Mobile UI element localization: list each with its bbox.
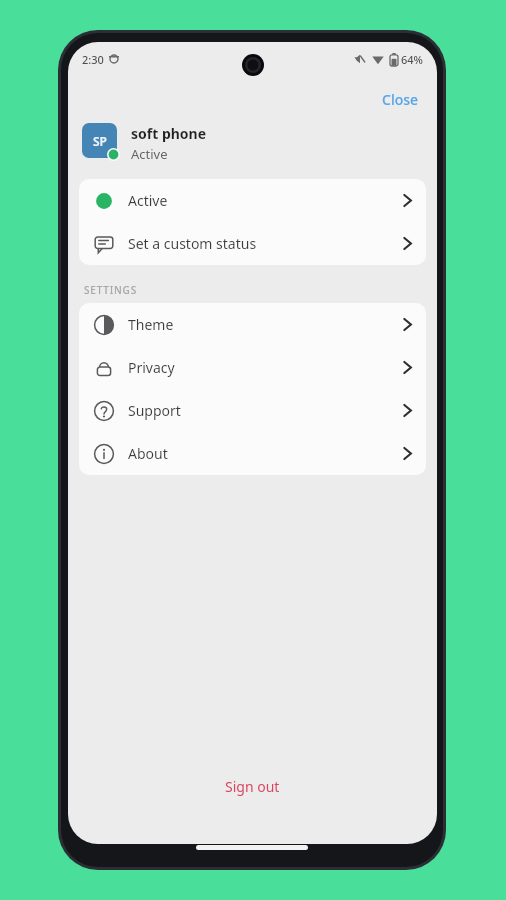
staticText: SETTINGS <box>84 283 137 297</box>
staticText: Support <box>128 401 403 420</box>
staticText: 2:30 <box>82 52 104 67</box>
staticText: SP <box>93 133 107 149</box>
staticText: Close <box>382 90 419 109</box>
button[interactable]: About <box>79 432 426 475</box>
staticText: Theme <box>128 315 403 334</box>
staticText: Set a custom status <box>128 234 403 253</box>
button[interactable]: Set a custom status <box>79 222 426 265</box>
button[interactable]: SP <box>68 121 437 165</box>
staticText: About <box>128 444 403 463</box>
staticText: Privacy <box>128 358 403 377</box>
staticText: Active <box>131 145 168 163</box>
button[interactable]: Theme <box>79 303 426 346</box>
button[interactable]: Active <box>79 179 426 222</box>
staticText: 64% <box>401 52 423 67</box>
button[interactable]: Privacy <box>79 346 426 389</box>
button[interactable]: Support <box>79 389 426 432</box>
button[interactable]: Sign out <box>68 767 437 806</box>
button[interactable]: Close <box>364 84 437 115</box>
staticText: Active <box>128 191 403 210</box>
staticText: Sign out <box>225 777 280 796</box>
staticText: soft phone <box>131 124 207 143</box>
